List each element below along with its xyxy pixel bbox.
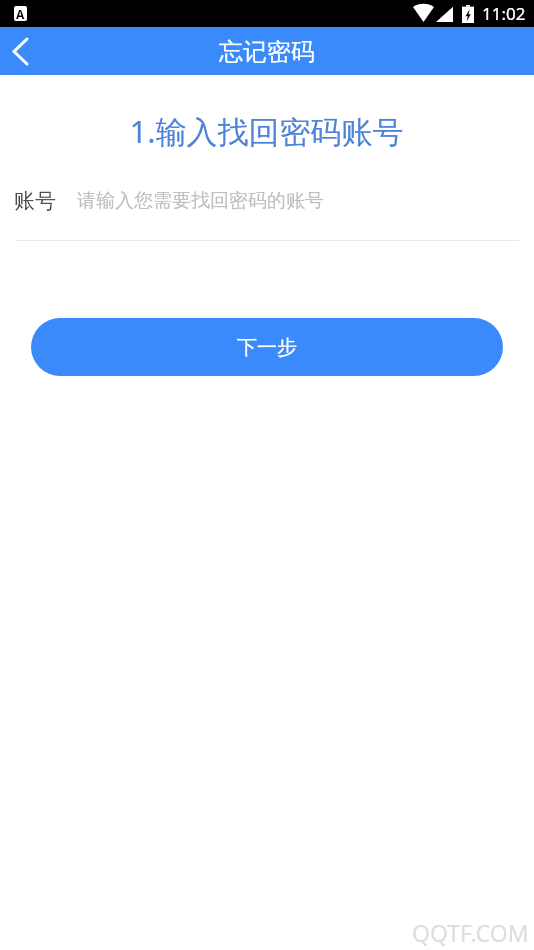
staticText: QQTF.COM	[412, 917, 529, 948]
button[interactable]: 账号	[0, 188, 534, 214]
staticText: A	[16, 6, 25, 21]
button[interactable]: 下一步	[31, 318, 503, 376]
staticText: 账号	[14, 188, 56, 214]
staticText: 下一步	[237, 335, 297, 360]
button[interactable]: Back	[0, 27, 40, 75]
staticText: 11:02	[482, 2, 526, 25]
staticText: 1.输入找回密码账号	[129, 110, 404, 152]
staticText: 请输入您需要找回密码的账号	[77, 189, 324, 213]
staticText: 忘记密码	[219, 37, 315, 67]
